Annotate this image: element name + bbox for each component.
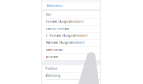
button[interactable]: Position [41, 65, 100, 72]
staticText: Position [45, 67, 57, 70]
staticText: Nachname (Ausgeschrieben) [45, 41, 84, 44]
staticText: Vorname (Ausgeschrieben) [45, 20, 83, 23]
button[interactable]: 2. Vorname (Ausgeschrieben) [41, 32, 100, 39]
staticText: Zweiter Vorname [45, 27, 69, 30]
button[interactable]: Titel [41, 11, 100, 18]
staticText: Abteilung [45, 74, 60, 77]
staticText: Titel [45, 13, 51, 16]
staticText: Spitzname [45, 55, 58, 58]
staticText: Abbrechen [46, 4, 62, 8]
button[interactable]: Vorname (Ausgeschrieben) [41, 18, 100, 25]
button[interactable]: Abbrechen [41, 2, 100, 9]
button[interactable]: Abteilung [41, 72, 100, 79]
button[interactable]: Zweiter Vorname [41, 25, 100, 32]
staticText: 2. Vorname (Ausgeschrieben) [45, 34, 87, 37]
button[interactable]: Namenszusatz [41, 46, 100, 53]
button[interactable]: Spitzname [41, 53, 100, 60]
staticText: Namenszusatz [45, 48, 62, 51]
button[interactable]: Nachname (Ausgeschrieben) [41, 39, 100, 46]
